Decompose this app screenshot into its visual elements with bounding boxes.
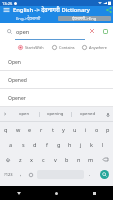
button[interactable]: Shift xyxy=(0,152,15,167)
button[interactable]: w xyxy=(12,122,24,137)
staticText: w xyxy=(16,126,21,133)
button[interactable]: h xyxy=(64,137,75,152)
staticText: i xyxy=(85,126,87,133)
staticText: a xyxy=(9,141,13,148)
button[interactable]: z xyxy=(15,152,26,167)
button[interactable]: StartsWith xyxy=(18,45,44,50)
staticText: Opened xyxy=(8,77,27,84)
button[interactable]: Contains xyxy=(52,45,75,50)
button[interactable]: Eng->देवनागरी xyxy=(0,14,56,23)
button[interactable]: Back xyxy=(0,186,37,200)
button[interactable]: v xyxy=(49,152,61,167)
button[interactable]: x xyxy=(26,152,37,167)
staticText: g xyxy=(57,141,61,148)
staticText: open xyxy=(16,28,30,35)
staticText: x xyxy=(30,156,33,163)
button[interactable]: c xyxy=(37,152,49,167)
staticText: r xyxy=(40,126,43,133)
button[interactable]: Open xyxy=(0,53,113,71)
staticText: . xyxy=(89,171,91,178)
button[interactable]: Search xyxy=(95,167,113,182)
staticText: ?123 xyxy=(4,172,13,177)
button[interactable]: e xyxy=(24,122,36,137)
button[interactable]: . xyxy=(85,167,95,182)
staticText: e xyxy=(28,126,32,133)
staticText: v xyxy=(54,156,57,163)
button[interactable]: p xyxy=(102,122,113,137)
button[interactable]: j xyxy=(75,137,86,152)
button[interactable]: f xyxy=(41,137,53,152)
button[interactable]: Recents xyxy=(75,186,113,200)
staticText: Anywhere xyxy=(89,45,107,50)
button[interactable]: a xyxy=(5,137,17,152)
staticText: Open xyxy=(8,59,21,66)
staticText: z xyxy=(19,156,22,163)
staticText: opened xyxy=(80,111,95,117)
button[interactable]: k xyxy=(86,137,97,152)
button[interactable]: opening xyxy=(40,107,71,121)
staticText: t xyxy=(52,126,54,133)
button[interactable]: s xyxy=(17,137,29,152)
staticText: u xyxy=(73,126,77,133)
button[interactable]: देवनागरी->Eng xyxy=(58,16,111,21)
staticText: d xyxy=(33,141,37,148)
button[interactable]: g xyxy=(53,137,64,152)
staticText: , xyxy=(20,171,22,178)
staticText: Eng->देवनागरी xyxy=(16,16,41,22)
staticText: o xyxy=(95,126,99,133)
button[interactable]: y xyxy=(58,122,69,137)
button[interactable]: r xyxy=(36,122,47,137)
staticText: j xyxy=(80,141,82,148)
staticText: c xyxy=(42,156,45,163)
button[interactable]: Menu xyxy=(0,6,13,14)
staticText: q xyxy=(4,126,8,133)
button[interactable]: q xyxy=(0,122,12,137)
staticText: Opener xyxy=(8,95,26,102)
button[interactable]: d xyxy=(29,137,41,152)
button[interactable]: open xyxy=(9,107,39,121)
button[interactable]: Voice input xyxy=(103,110,112,119)
button[interactable]: o xyxy=(91,122,102,137)
staticText: f xyxy=(46,141,48,148)
staticText: m xyxy=(88,156,94,163)
button[interactable]: Clear xyxy=(87,26,97,36)
button[interactable]: l xyxy=(97,137,108,152)
staticText: b xyxy=(65,156,69,163)
button[interactable]: m xyxy=(85,152,97,167)
button[interactable]: ?123 xyxy=(0,167,16,182)
button[interactable]: i xyxy=(80,122,91,137)
staticText: open xyxy=(19,111,30,117)
button[interactable]: Home xyxy=(37,186,75,200)
staticText: n xyxy=(77,156,81,163)
button[interactable]: Opener xyxy=(0,89,113,107)
button[interactable]: , xyxy=(16,167,26,182)
staticText: देवनागरी->Eng xyxy=(72,16,97,21)
staticText: l xyxy=(102,141,104,148)
staticText: 13:26 xyxy=(2,1,13,6)
button[interactable]: Copy xyxy=(100,26,110,36)
staticText: English -> देवनागरी Dictionary xyxy=(13,6,105,14)
staticText: s xyxy=(22,141,25,148)
button[interactable]: Share xyxy=(105,6,113,14)
button[interactable]: Emoji xyxy=(26,167,36,182)
button[interactable]: Anywhere xyxy=(82,45,107,50)
staticText: p xyxy=(106,126,110,133)
staticText: Contains xyxy=(59,45,75,50)
button[interactable]: u xyxy=(69,122,80,137)
staticText: opening xyxy=(47,111,64,117)
button[interactable]: n xyxy=(73,152,85,167)
staticText: h xyxy=(68,141,72,148)
button[interactable]: Backspace xyxy=(97,152,113,167)
button[interactable]: b xyxy=(61,152,73,167)
button[interactable]: Opened xyxy=(0,71,113,89)
button[interactable]: opened xyxy=(72,107,103,121)
staticText: y xyxy=(62,126,65,133)
button[interactable]: t xyxy=(47,122,58,137)
staticText: StartsWith xyxy=(25,45,44,50)
staticText: k xyxy=(90,141,93,148)
